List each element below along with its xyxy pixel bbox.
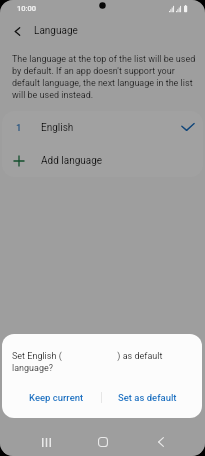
- staticText: Set as default: [118, 392, 177, 403]
- button[interactable]: Keep current: [12, 385, 101, 409]
- staticText: Language: [34, 25, 78, 37]
- staticText: 1: [16, 122, 22, 133]
- staticText: English: [41, 122, 74, 134]
- staticText: 10:00: [17, 4, 37, 13]
- staticText: Keep current: [29, 392, 84, 403]
- staticText: Set English ( ) as default language?: [12, 349, 190, 373]
- staticText: Add language: [41, 155, 103, 167]
- staticText: The language at the top of the list will…: [12, 52, 198, 100]
- button[interactable]: Recent apps: [37, 433, 55, 451]
- button[interactable]: Set as default: [102, 385, 192, 409]
- button[interactable]: Back: [152, 433, 170, 451]
- button[interactable]: 1: [2, 111, 203, 144]
- button[interactable]: Navigate up: [8, 22, 26, 40]
- button[interactable]: Add language: [2, 144, 203, 177]
- button[interactable]: Home: [94, 433, 112, 451]
